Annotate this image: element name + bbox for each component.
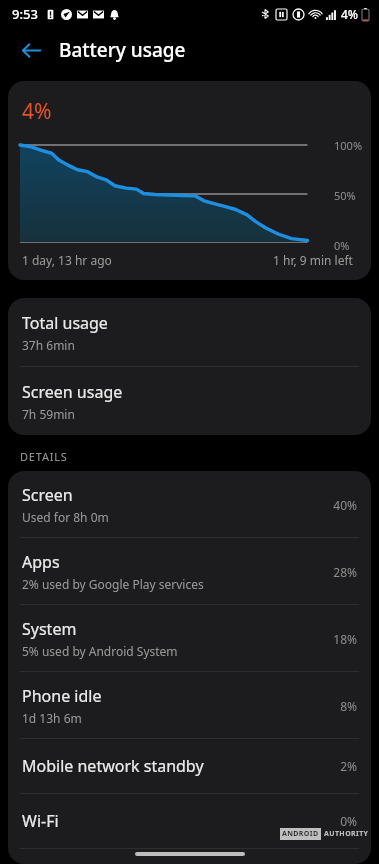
button[interactable]: Back: [14, 33, 48, 67]
button[interactable]: 4%: [8, 81, 371, 280]
staticText: 28%: [333, 564, 357, 580]
button[interactable]: Phone idle: [8, 672, 371, 738]
staticText: 2% used by Google Play services: [22, 576, 204, 592]
button[interactable]: Bluetooth: [8, 849, 371, 864]
staticText: 40%: [333, 497, 357, 513]
button[interactable]: Mobile network standby: [8, 739, 371, 793]
staticText: 4%: [341, 6, 359, 22]
staticText: 4%: [22, 97, 52, 126]
button[interactable]: Screen: [8, 471, 371, 537]
staticText: 9:53: [12, 5, 38, 23]
button[interactable]: Wi-Fi: [8, 794, 371, 848]
staticText: 1 hr, 9 min left: [273, 252, 353, 268]
staticText: ANDROID: [282, 829, 319, 839]
staticText: Mobile network standby: [22, 755, 204, 777]
staticText: 2%: [340, 758, 357, 774]
staticText: Battery usage: [59, 37, 186, 63]
staticText: 8%: [340, 698, 357, 714]
staticText: 37h 6min: [22, 337, 75, 353]
button[interactable]: Screen usage: [8, 367, 371, 435]
staticText: 18%: [333, 631, 357, 647]
staticText: 7h 59min: [22, 406, 75, 422]
staticText: Apps: [22, 551, 60, 573]
staticText: 100%: [334, 138, 363, 153]
staticText: Screen: [22, 484, 73, 506]
staticText: Wi-Fi: [22, 810, 59, 832]
button[interactable]: Total usage: [8, 298, 371, 366]
staticText: 50%: [334, 188, 356, 203]
staticText: AUTHORITY: [324, 829, 369, 839]
staticText: 1 day, 13 hr ago: [22, 252, 112, 268]
button[interactable]: Apps: [8, 538, 371, 604]
button[interactable]: System: [8, 605, 371, 671]
staticText: 1d 13h 6m: [22, 710, 82, 726]
staticText: Used for 8h 0m: [22, 509, 109, 525]
staticText: 0%: [334, 238, 350, 253]
staticText: Total usage: [22, 312, 108, 334]
staticText: System: [22, 618, 77, 640]
staticText: Phone idle: [22, 685, 102, 707]
staticText: 0%: [340, 813, 357, 829]
staticText: 5% used by Android System: [22, 643, 178, 659]
staticText: Screen usage: [22, 381, 123, 403]
staticText: DETAILS: [20, 449, 68, 464]
